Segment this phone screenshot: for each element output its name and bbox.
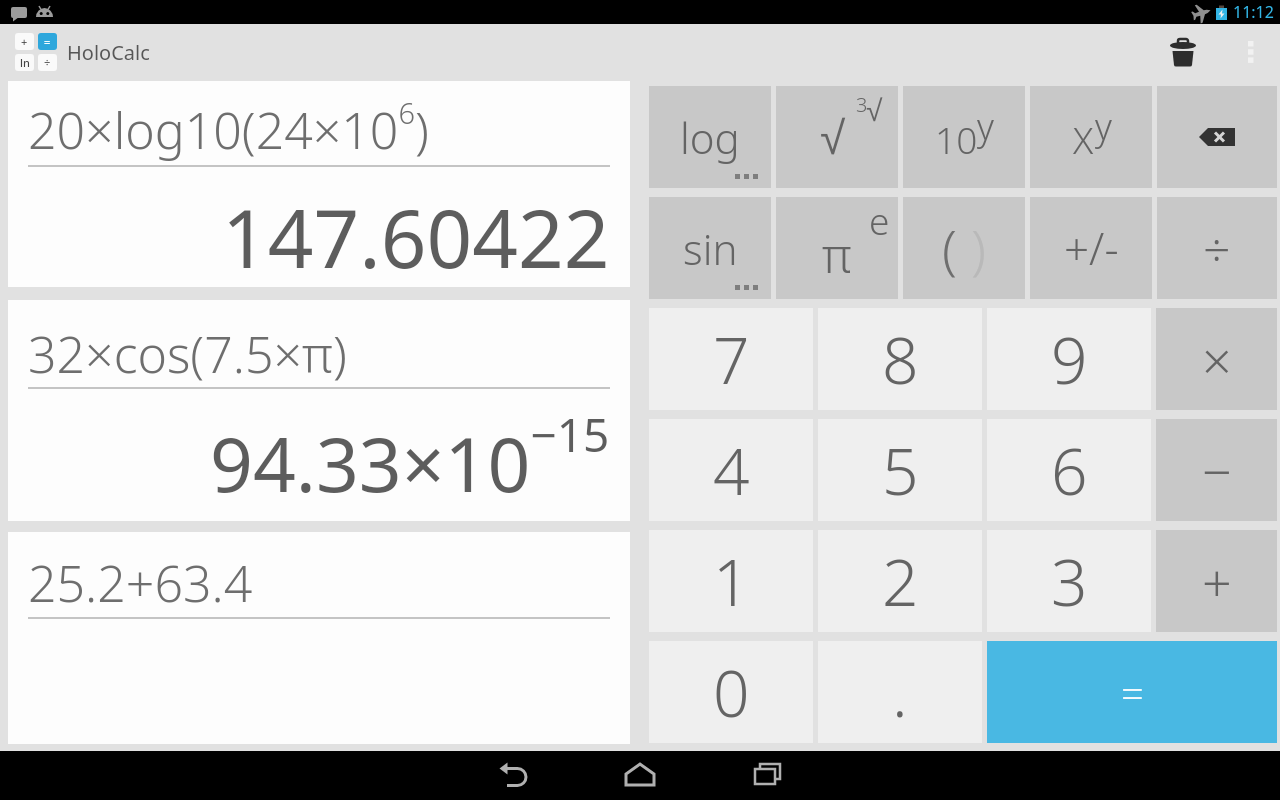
staticText: log [680,109,740,166]
button[interactable]: + [1156,530,1277,632]
button[interactable]: π [776,197,898,299]
staticText: 10 [935,114,978,164]
button[interactable]: 9 [987,308,1151,410]
staticText: π [822,222,852,287]
staticText: HoloCalc [67,39,150,66]
button[interactable] [495,759,529,793]
button[interactable] [751,759,785,793]
staticText: 1 [713,538,750,625]
staticText: y [977,102,994,151]
button[interactable]: +/- [1030,197,1152,299]
button[interactable] [623,759,657,793]
button[interactable]: 25.2+63.4 [8,532,630,744]
button[interactable]: 8 [818,308,982,410]
staticText: ÷ [44,55,51,70]
button[interactable]: 7 [649,308,813,410]
staticText: 5 [882,427,919,514]
staticText: 20×log10(24×106) [28,93,429,163]
staticText: . [892,649,908,736]
button[interactable]: 2 [818,530,982,632]
staticText: √ [866,94,883,128]
button[interactable]: 20×log10(24×106) [8,81,630,287]
button[interactable]: log [649,86,771,188]
button[interactable]: 3 [987,530,1151,632]
button[interactable]: 0 [649,641,813,743]
staticText: √ [820,112,846,163]
staticText: 94.33×10−15 [210,403,610,513]
button[interactable] [1163,32,1203,72]
button[interactable]: 1 [649,530,813,632]
staticText: × [1202,324,1232,395]
staticText: = [1121,665,1144,719]
button[interactable] [1157,86,1277,188]
button[interactable] [1235,36,1267,68]
button[interactable]: sin [649,197,771,299]
button[interactable]: × [1156,308,1277,410]
staticText: 32×cos(7.5×π) [28,320,347,388]
button[interactable]: ÷ [1157,197,1277,299]
staticText: 8 [882,316,919,403]
button[interactable]: − [1156,419,1277,521]
staticText: e [869,195,890,245]
staticText: + [1202,546,1232,617]
button[interactable]: X [1030,86,1152,188]
staticText: − [1202,435,1232,506]
staticText: 6 [1051,427,1088,514]
button[interactable]: = [987,641,1277,743]
staticText: 0 [713,649,750,736]
staticText: ln [20,55,30,70]
staticText: sin [683,220,738,277]
staticText: 4 [713,427,750,514]
staticText: + [21,34,28,49]
button[interactable]: 32×cos(7.5×π) [8,300,630,521]
staticText: = [44,34,51,49]
button[interactable]: 6 [987,419,1151,521]
staticText: 25.2+63.4 [28,549,253,617]
staticText: 3 [1051,538,1088,625]
staticText: ÷ [1203,216,1231,281]
staticText: 3 [856,91,868,118]
button[interactable]: ( ) [903,197,1025,299]
staticText: ( ) [942,211,986,285]
button[interactable]: 5 [818,419,982,521]
staticText: y [1095,102,1112,151]
button[interactable]: 4 [649,419,813,521]
staticText: +/- [1064,218,1119,278]
button[interactable]: 10 [903,86,1025,188]
staticText: 2 [882,538,919,625]
button[interactable]: √ [776,86,898,188]
staticText: 7 [713,316,750,403]
button[interactable]: . [818,641,982,743]
staticText: 147.60422 [222,182,610,291]
staticText: X [1073,114,1094,164]
staticText: 11:12 [1233,1,1274,23]
staticText: 9 [1051,316,1088,403]
